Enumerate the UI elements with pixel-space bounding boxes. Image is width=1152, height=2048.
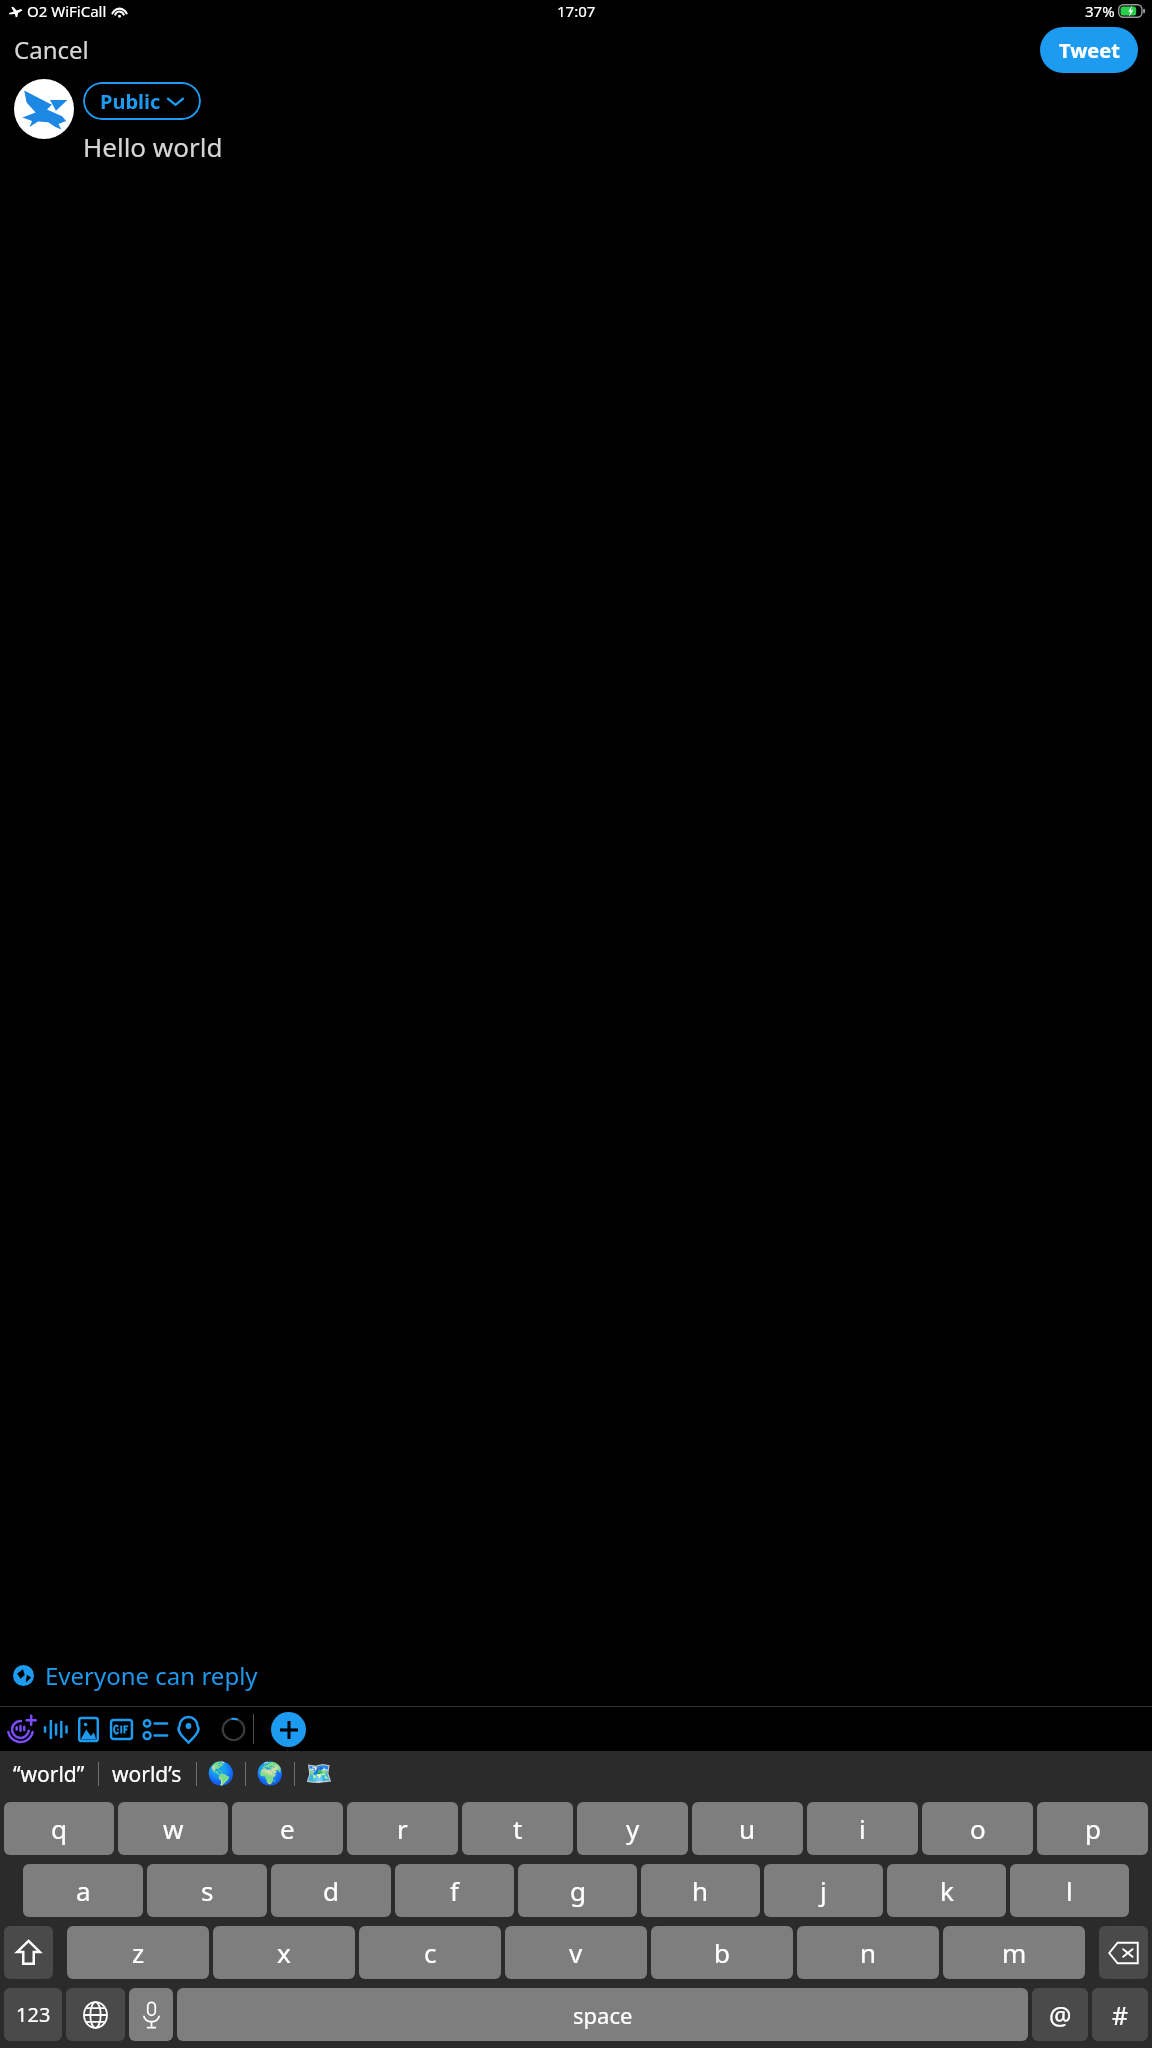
- staticText: d: [323, 1873, 339, 1908]
- staticText: h: [692, 1873, 709, 1908]
- button[interactable]: i: [807, 1802, 918, 1855]
- staticText: Everyone can reply: [45, 1659, 258, 1692]
- button[interactable]: v: [505, 1926, 647, 1979]
- button[interactable]: w: [118, 1802, 228, 1855]
- button[interactable]: Public: [83, 82, 201, 120]
- button[interactable]: Backspace: [1099, 1926, 1148, 1979]
- staticText: n: [860, 1935, 877, 1970]
- staticText: r: [397, 1811, 408, 1846]
- button[interactable]: p: [1037, 1802, 1148, 1855]
- button[interactable]: k: [887, 1864, 1006, 1917]
- button[interactable]: h: [641, 1864, 760, 1917]
- button[interactable]: Shift: [4, 1926, 53, 1979]
- button[interactable]: Poll: [136, 1710, 174, 1748]
- staticText: 37%: [1085, 1, 1115, 21]
- button[interactable]: u: [692, 1802, 803, 1855]
- button[interactable]: Add voice: [3, 1710, 41, 1748]
- staticText: p: [1085, 1811, 1101, 1846]
- staticText: f: [450, 1873, 459, 1908]
- button[interactable]: Photos: [69, 1710, 107, 1748]
- button[interactable]: x: [213, 1926, 355, 1979]
- button[interactable]: q: [4, 1802, 114, 1855]
- button[interactable]: world’s: [98, 1751, 196, 1797]
- button[interactable]: Location: [169, 1710, 207, 1748]
- staticText: i: [859, 1811, 866, 1846]
- staticText: m: [1002, 1935, 1027, 1970]
- button[interactable]: c: [359, 1926, 501, 1979]
- button[interactable]: s: [147, 1864, 267, 1917]
- button[interactable]: 🗺: [294, 1751, 343, 1797]
- staticText: @: [1049, 1998, 1072, 2032]
- button[interactable]: 🌎: [196, 1751, 245, 1797]
- staticText: g: [570, 1873, 586, 1908]
- button[interactable]: b: [651, 1926, 793, 1979]
- staticText: space: [573, 2000, 633, 2030]
- staticText: 17:07: [557, 1, 596, 21]
- staticText: Tweet: [1059, 37, 1120, 64]
- button[interactable]: 🌍: [245, 1751, 294, 1797]
- button[interactable]: d: [271, 1864, 391, 1917]
- staticText: a: [76, 1873, 91, 1908]
- button[interactable]: Profile picture: [14, 79, 74, 139]
- staticText: Public: [100, 88, 161, 115]
- staticText: Cancel: [14, 33, 89, 66]
- button[interactable]: y: [577, 1802, 688, 1855]
- button[interactable]: z: [67, 1926, 209, 1979]
- button[interactable]: space: [177, 1988, 1028, 2041]
- staticText: 🌍: [256, 1761, 284, 1787]
- button[interactable]: j: [764, 1864, 883, 1917]
- button[interactable]: Voice input: [129, 1988, 173, 2041]
- button[interactable]: Tweet: [1040, 27, 1138, 73]
- staticText: l: [1066, 1873, 1073, 1908]
- button[interactable]: g: [518, 1864, 637, 1917]
- staticText: 🗺: [305, 1761, 333, 1787]
- button[interactable]: a: [23, 1864, 143, 1917]
- button[interactable]: m: [943, 1926, 1085, 1979]
- button[interactable]: e: [232, 1802, 343, 1855]
- button[interactable]: n: [797, 1926, 939, 1979]
- staticText: v: [569, 1935, 583, 1970]
- button[interactable]: @: [1032, 1988, 1088, 2041]
- staticText: u: [739, 1811, 756, 1846]
- staticText: o: [970, 1811, 986, 1846]
- button[interactable]: Add another tweet: [271, 1712, 306, 1747]
- staticText: Hello world: [83, 129, 223, 164]
- button[interactable]: Character count: [214, 1710, 252, 1748]
- button[interactable]: t: [462, 1802, 573, 1855]
- staticText: b: [714, 1935, 730, 1970]
- staticText: 🌎: [207, 1761, 235, 1787]
- staticText: k: [940, 1873, 954, 1908]
- button[interactable]: l: [1010, 1864, 1129, 1917]
- staticText: t: [513, 1811, 523, 1846]
- staticText: s: [201, 1873, 214, 1908]
- button[interactable]: o: [922, 1802, 1033, 1855]
- button[interactable]: GIF: [102, 1710, 140, 1748]
- staticText: world’s: [112, 1760, 182, 1789]
- staticText: e: [280, 1811, 295, 1846]
- button[interactable]: 123: [4, 1988, 62, 2041]
- staticText: j: [820, 1873, 827, 1908]
- staticText: O2 WiFiCall: [27, 1, 107, 21]
- button[interactable]: Cancel: [5, 27, 98, 72]
- button[interactable]: r: [347, 1802, 458, 1855]
- button[interactable]: #: [1092, 1988, 1148, 2041]
- staticText: q: [51, 1811, 67, 1846]
- button[interactable]: “world”: [0, 1751, 97, 1797]
- button[interactable]: Audio: [36, 1710, 74, 1748]
- staticText: c: [424, 1935, 437, 1970]
- staticText: #: [1112, 1998, 1129, 2032]
- staticText: z: [132, 1935, 145, 1970]
- staticText: y: [626, 1811, 640, 1846]
- staticText: w: [163, 1811, 184, 1846]
- staticText: x: [277, 1935, 291, 1970]
- button[interactable]: Change language: [66, 1988, 125, 2041]
- staticText: 123: [16, 2001, 51, 2028]
- staticText: “world”: [13, 1760, 85, 1789]
- button[interactable]: Everyone can reply: [0, 1644, 1152, 1706]
- button[interactable]: f: [395, 1864, 514, 1917]
